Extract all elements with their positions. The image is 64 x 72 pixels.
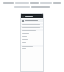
button[interactable]: [22, 29, 42, 31]
button[interactable]: App bar: [21, 13, 43, 72]
button[interactable]: [22, 26, 42, 28]
button[interactable]: [22, 19, 42, 22]
button[interactable]: Back: [22, 16, 24, 18]
button[interactable]: [22, 23, 42, 25]
other: App bar: [22, 15, 42, 18]
button[interactable]: [22, 45, 42, 47]
